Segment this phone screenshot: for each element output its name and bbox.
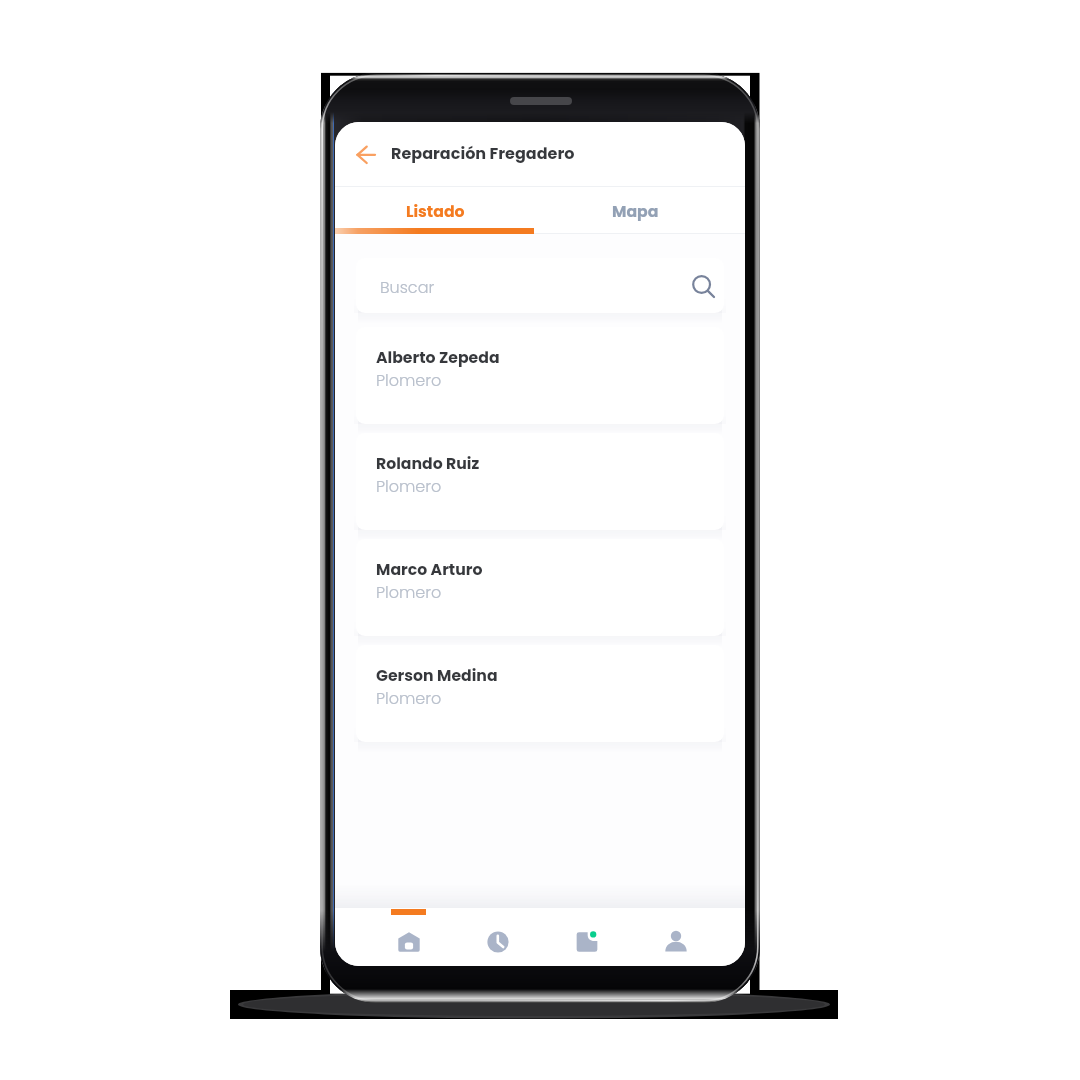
staticText: Plomero: [376, 369, 442, 391]
staticText: Gerson Medina: [376, 665, 498, 687]
button[interactable]: Listado: [335, 187, 535, 234]
staticText: Mapa: [612, 201, 659, 223]
button[interactable]: Mapa: [535, 187, 735, 234]
staticText: Plomero: [376, 687, 442, 709]
button[interactable]: History: [453, 913, 542, 966]
button[interactable]: Profile: [631, 913, 720, 966]
staticText: Buscar: [380, 276, 435, 298]
staticText: Plomero: [376, 475, 442, 497]
button[interactable]: Marco Arturo: [356, 539, 724, 636]
staticText: Listado: [406, 201, 465, 223]
button[interactable]: Buscar: [356, 258, 724, 313]
staticText: Plomero: [376, 581, 442, 603]
staticText: Marco Arturo: [376, 559, 483, 581]
button[interactable]: Jobs: [542, 913, 631, 966]
button[interactable]: Home: [364, 913, 453, 966]
staticText: Alberto Zepeda: [376, 347, 500, 369]
button[interactable]: Gerson Medina: [356, 645, 724, 742]
button[interactable]: Alberto Zepeda: [356, 327, 724, 424]
staticText: Rolando Ruiz: [376, 453, 480, 475]
button[interactable]: Rolando Ruiz: [356, 433, 724, 530]
staticText: Reparación Fregadero: [391, 142, 575, 164]
button[interactable]: Back: [343, 133, 387, 177]
